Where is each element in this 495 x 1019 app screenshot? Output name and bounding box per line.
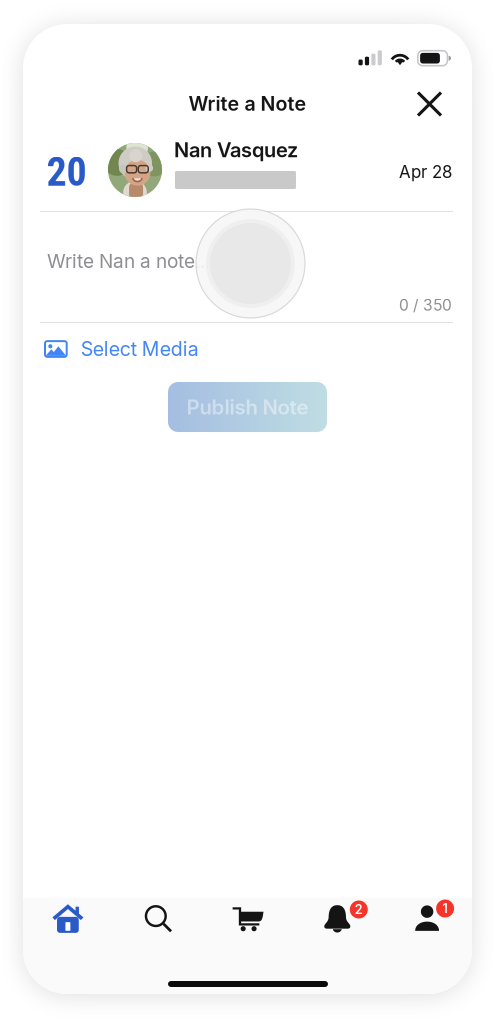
button[interactable]: Home	[23, 898, 113, 938]
staticText: 2	[355, 902, 363, 917]
button[interactable]: Select Media	[44, 327, 274, 371]
button[interactable]: Close	[405, 80, 453, 128]
staticText: 20	[46, 149, 86, 195]
staticText: Nan Vasquez	[174, 138, 298, 162]
staticText: Select Media	[81, 337, 199, 361]
staticText: Write a Note	[188, 92, 306, 115]
button[interactable]: Cart	[203, 898, 292, 938]
button[interactable]: Search	[113, 898, 203, 938]
staticText: Apr 28	[399, 162, 452, 182]
staticText: 1	[443, 901, 448, 916]
staticText: 0 / 350	[399, 296, 452, 314]
staticText: Publish Note	[186, 395, 308, 419]
button[interactable]: Notifications, 2 new	[292, 898, 382, 938]
staticText: Write Nan a note...	[47, 249, 210, 272]
button[interactable]: Profile, 1 new	[382, 898, 472, 938]
button[interactable]: Publish Note	[168, 382, 327, 432]
